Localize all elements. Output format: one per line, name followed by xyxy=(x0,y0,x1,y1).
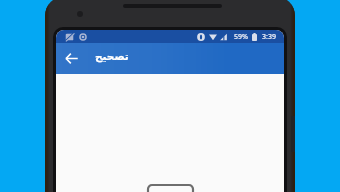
button[interactable] xyxy=(148,185,193,192)
button[interactable]: Back xyxy=(61,48,81,68)
staticText: 59% xyxy=(234,32,248,42)
staticText: تصحيح xyxy=(95,50,129,62)
staticText: 3:39 xyxy=(262,32,276,42)
